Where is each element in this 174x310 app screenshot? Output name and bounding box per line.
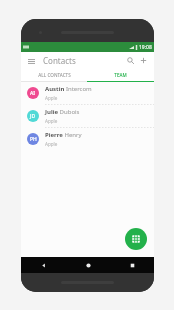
staticText: PH	[30, 136, 37, 143]
staticText: Pierre Henry	[45, 131, 82, 139]
staticText: JD	[30, 113, 36, 120]
button[interactable]: ALL CONTACTS	[21, 69, 87, 81]
staticText: Apple	[45, 141, 58, 147]
staticText: Apple	[45, 118, 58, 124]
button[interactable]: AI	[21, 82, 154, 104]
staticText: Apple	[45, 95, 58, 101]
button[interactable]: Open navigation menu	[25, 55, 37, 67]
button[interactable]: Search	[124, 54, 137, 67]
staticText: 19:08	[139, 44, 152, 51]
staticText: AI	[30, 90, 36, 97]
staticText: TEAM	[114, 72, 127, 78]
button[interactable]: PH	[21, 128, 154, 150]
button[interactable]: TEAM	[87, 69, 154, 81]
button[interactable]: Home	[66, 257, 110, 273]
staticText: Julie Dubois	[45, 108, 80, 116]
button[interactable]: Add contact	[137, 54, 150, 67]
button[interactable]: Open dialpad	[125, 228, 147, 250]
button[interactable]: JD	[21, 105, 154, 127]
staticText: Austin Intercom	[45, 85, 92, 93]
staticText: ALL CONTACTS	[38, 72, 71, 78]
staticText: Contacts	[43, 55, 76, 66]
button[interactable]: Back	[21, 257, 66, 273]
button[interactable]: Recent apps	[110, 257, 154, 273]
